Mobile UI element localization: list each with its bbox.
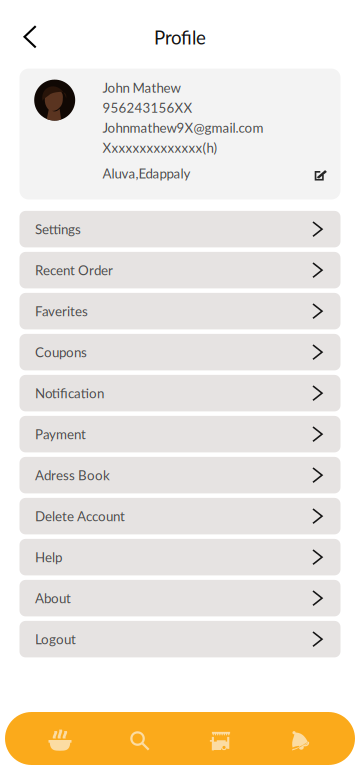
button[interactable]: Delete Account bbox=[19, 498, 340, 534]
button[interactable]: Recent Order bbox=[19, 252, 340, 288]
button[interactable]: Search bbox=[100, 712, 180, 765]
staticText: 956243156XX bbox=[103, 100, 193, 116]
button[interactable]: Back bbox=[17, 14, 43, 54]
button[interactable]: Help bbox=[19, 539, 340, 575]
button[interactable]: About bbox=[19, 580, 340, 616]
staticText: Adress Book bbox=[35, 467, 110, 483]
button[interactable]: Orders bbox=[180, 712, 260, 765]
staticText: Aluva,Edappaly bbox=[103, 165, 191, 181]
staticText: Recent Order bbox=[35, 262, 113, 278]
button[interactable]: Faverites bbox=[19, 293, 340, 329]
staticText: Help bbox=[35, 549, 62, 565]
staticText: Notification bbox=[35, 385, 104, 401]
button[interactable]: Delivery bbox=[260, 712, 340, 765]
staticText: Profile bbox=[154, 26, 206, 48]
button[interactable]: Payment bbox=[19, 416, 340, 452]
button[interactable]: Settings bbox=[19, 211, 340, 247]
button[interactable]: Coupons bbox=[19, 334, 340, 370]
button[interactable]: Logout bbox=[19, 621, 340, 657]
staticText: Coupons bbox=[35, 344, 87, 360]
button[interactable]: Adress Book bbox=[19, 457, 340, 493]
button[interactable]: Notification bbox=[19, 375, 340, 411]
staticText: Payment bbox=[35, 426, 86, 442]
staticText: John Mathew bbox=[103, 80, 181, 96]
button[interactable]: Edit profile bbox=[311, 162, 330, 184]
staticText: Logout bbox=[35, 631, 76, 647]
staticText: About bbox=[35, 590, 71, 606]
staticText: Johnmathew9X@gmail.com bbox=[103, 120, 264, 136]
staticText: Xxxxxxxxxxxxxx(h) bbox=[103, 140, 218, 156]
staticText: Faverites bbox=[35, 303, 88, 319]
staticText: Delete Account bbox=[35, 508, 125, 524]
button[interactable]: Home bbox=[20, 712, 100, 765]
staticText: Settings bbox=[35, 221, 81, 237]
